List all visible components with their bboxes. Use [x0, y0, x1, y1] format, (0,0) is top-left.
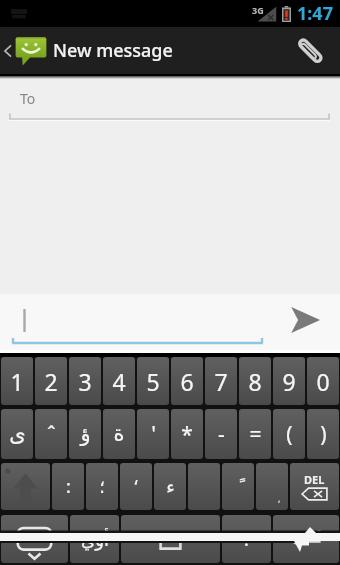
staticText: DEL [304, 472, 325, 487]
staticText: = [249, 420, 262, 449]
button[interactable]: ؛ [86, 463, 118, 510]
staticText: 4 [112, 366, 126, 397]
button[interactable]: - [205, 409, 237, 459]
button[interactable]: 7 [205, 357, 237, 405]
button[interactable]: 0 [307, 357, 339, 405]
staticText: 9 [282, 366, 296, 397]
staticText: 8 [248, 366, 262, 397]
staticText: ( [286, 420, 293, 449]
staticText: ˆ [47, 420, 56, 449]
button[interactable]: ً [222, 463, 254, 510]
button[interactable]: ) [307, 409, 339, 459]
staticText: ) [320, 420, 327, 449]
button[interactable]: Attach [293, 27, 340, 74]
staticText: 0 [316, 366, 330, 397]
staticText: ؛ [99, 476, 105, 497]
other: Shift [1, 463, 50, 510]
staticText: * [181, 420, 193, 449]
staticText: 7 [214, 366, 228, 397]
staticText: ؤ [80, 422, 91, 446]
button[interactable]: 1 [1, 357, 33, 405]
button[interactable]: Enter [273, 515, 339, 563]
button[interactable]: ˆ [35, 409, 67, 459]
button[interactable]: . [222, 515, 271, 563]
staticText: ة [113, 422, 125, 446]
other: Enter [273, 515, 339, 563]
button[interactable] [188, 463, 220, 510]
staticText: 3G [252, 4, 264, 16]
button[interactable]: ‘ [120, 463, 152, 510]
button[interactable]: Send [276, 294, 340, 350]
staticText: ، [277, 493, 281, 506]
button[interactable]: ة [103, 409, 135, 459]
button[interactable]: Shift [1, 463, 50, 510]
button[interactable]: 9 [273, 357, 305, 405]
button[interactable]: Navigate up [0, 27, 179, 74]
other: Space [121, 515, 220, 563]
staticText: - [218, 420, 225, 449]
staticText: : [66, 474, 71, 499]
staticText: ى [9, 422, 26, 446]
staticText: 1 [10, 366, 24, 397]
button[interactable]: 4 [103, 357, 135, 405]
button[interactable]: ' [137, 409, 169, 459]
other: Delete [290, 463, 339, 510]
staticText: ‘ [134, 474, 138, 499]
staticText: 6 [180, 366, 194, 397]
button[interactable]: ء [154, 463, 186, 510]
button[interactable]: To [0, 79, 340, 121]
button[interactable] [0, 294, 275, 350]
staticText: 1:47 [297, 1, 333, 26]
button[interactable]: : [52, 463, 84, 510]
button[interactable]: = [239, 409, 271, 459]
staticText: ء [166, 476, 175, 497]
other: Navigate up [4, 44, 12, 58]
staticText: ' [151, 420, 156, 449]
staticText: أوي [81, 529, 109, 550]
staticText: 5 [146, 366, 160, 397]
button[interactable]: ، [256, 463, 288, 510]
button[interactable]: ى [1, 409, 33, 459]
button[interactable]: ؤ [69, 409, 101, 459]
button[interactable]: * [171, 409, 203, 459]
other: Switch keyboard [1, 515, 68, 563]
button[interactable]: Space [121, 515, 220, 563]
staticText: 2 [44, 366, 58, 397]
button[interactable]: ( [273, 409, 305, 459]
staticText: 3 [78, 366, 92, 397]
button[interactable]: Switch keyboard [1, 515, 68, 563]
button[interactable]: 5 [137, 357, 169, 405]
button[interactable]: Delete [290, 463, 339, 510]
button[interactable]: 2 [35, 357, 67, 405]
button[interactable]: 3 [69, 357, 101, 405]
button[interactable]: أوي [70, 515, 119, 563]
button[interactable]: 8 [239, 357, 271, 405]
button[interactable]: 6 [171, 357, 203, 405]
staticText: New message [53, 38, 173, 63]
staticText: To [20, 89, 36, 108]
staticText: . [244, 527, 249, 552]
